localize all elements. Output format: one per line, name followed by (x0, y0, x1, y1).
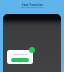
staticText: Saved to favorites (13, 53, 28, 55)
other: Saved (29, 47, 35, 53)
staticText: Save Favorites (22, 3, 43, 7)
button[interactable]: Saved to favorites (7, 50, 33, 64)
staticText: Keep what matters close (21, 6, 43, 9)
button[interactable] (11, 58, 29, 62)
